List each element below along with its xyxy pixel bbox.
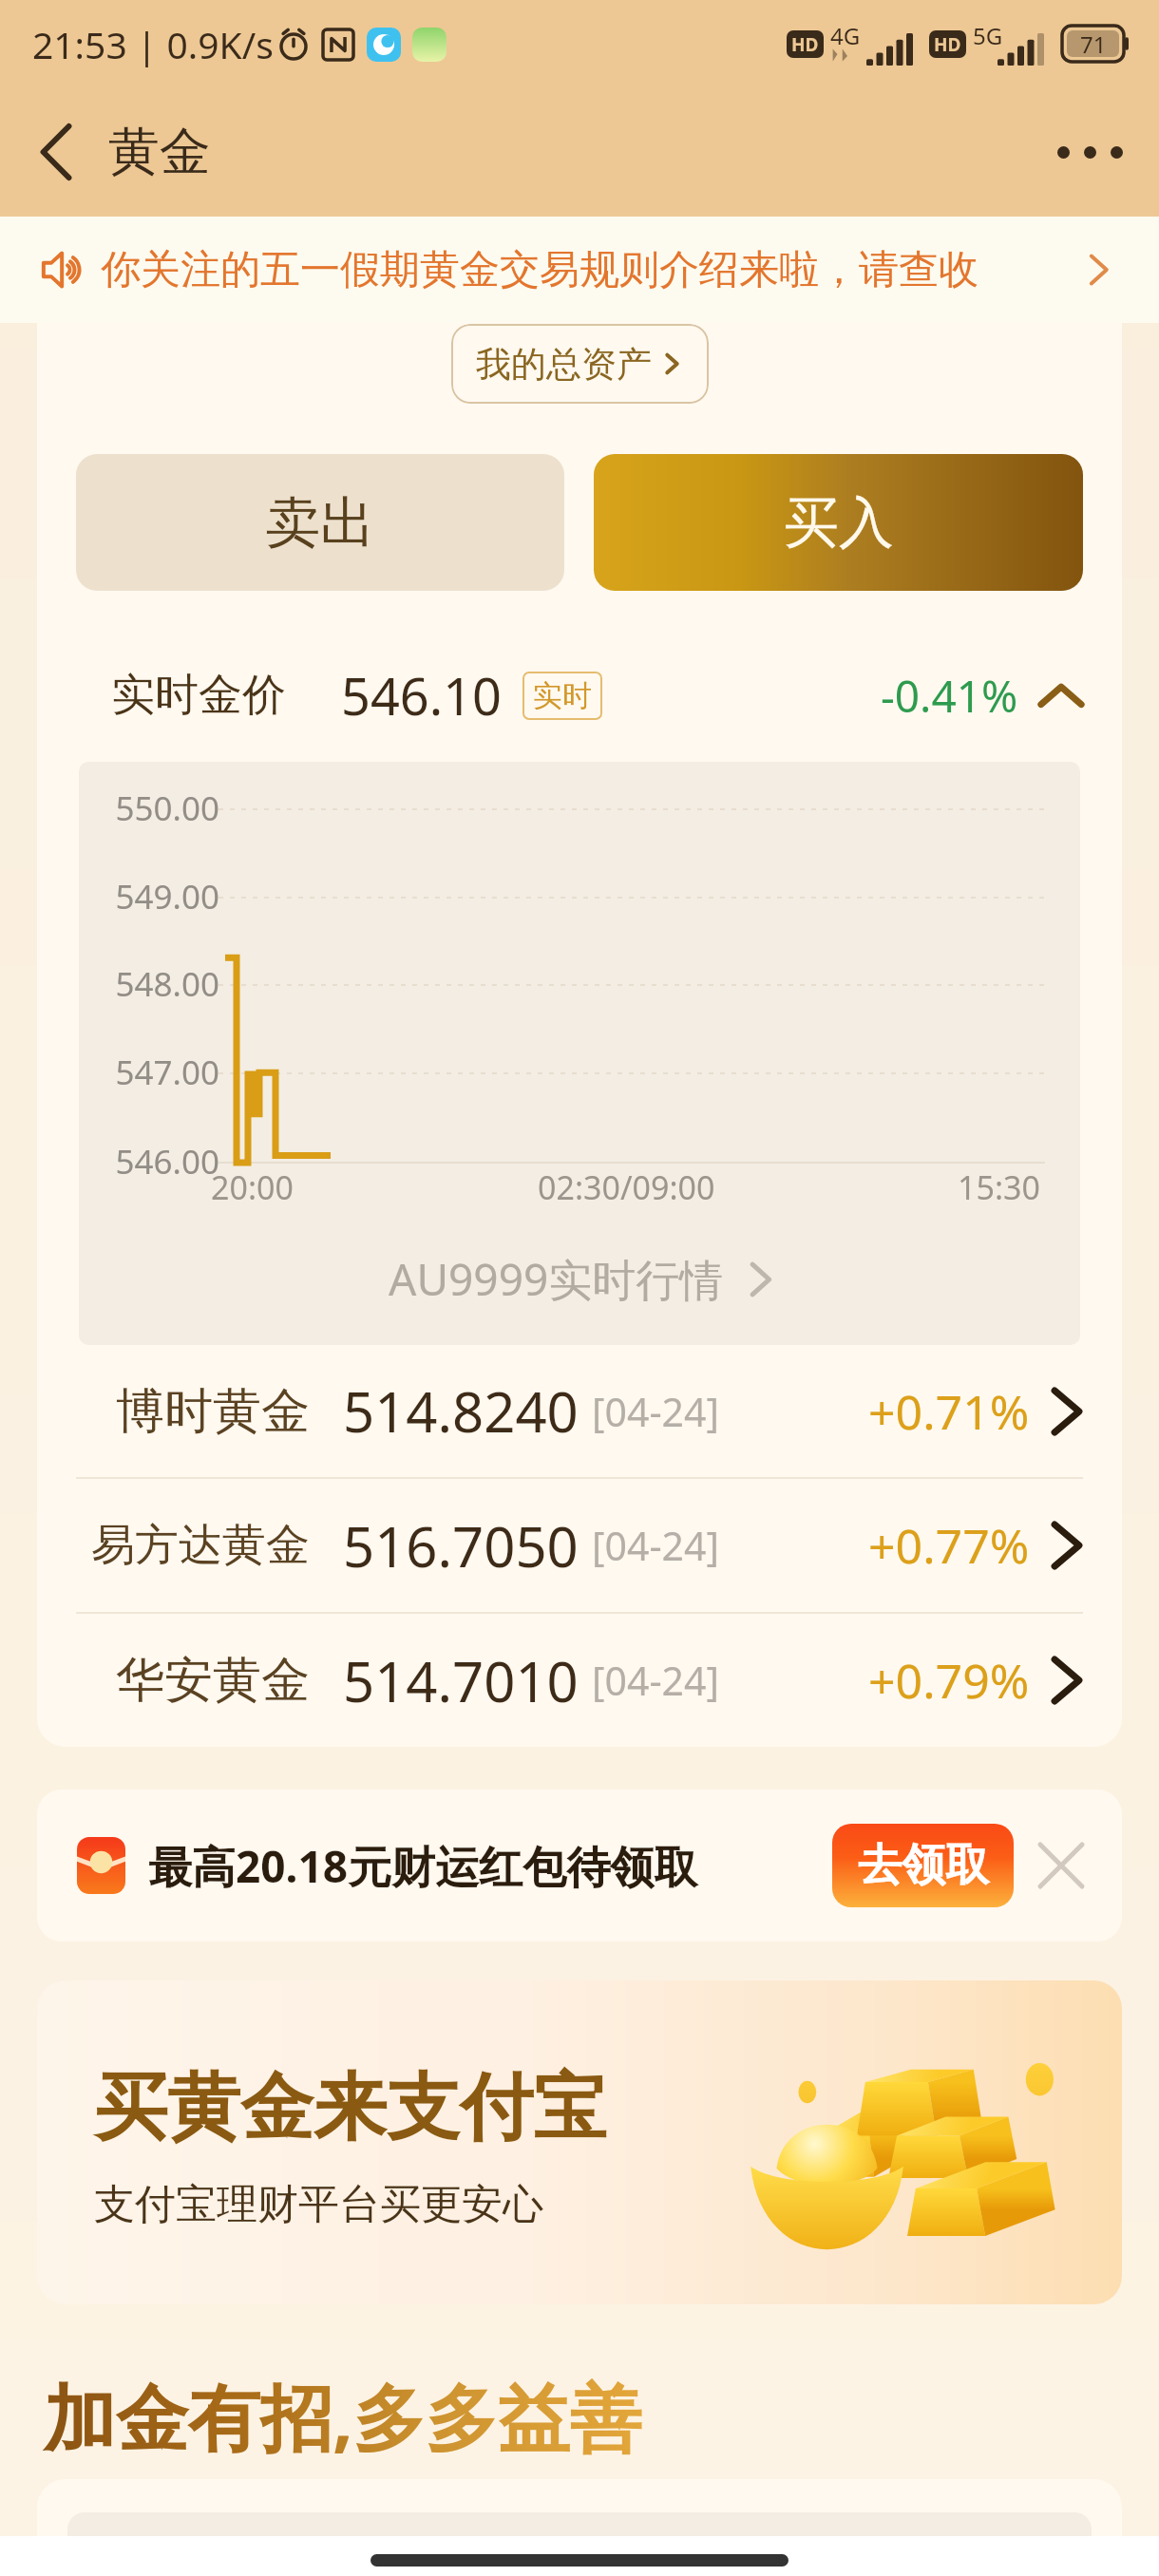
staticText: 去领取	[858, 1838, 989, 1893]
button[interactable]: 我的总资产	[451, 324, 709, 404]
button[interactable]: 博时黄金	[37, 1345, 1122, 1477]
staticText: 02:30/09:00	[538, 1165, 715, 1209]
staticText: AU9999实时行情	[389, 1249, 724, 1309]
staticText: 卖出	[265, 488, 375, 558]
staticText: 实时金价	[111, 668, 286, 723]
staticText: 21:53 | 0.9K/s	[32, 19, 274, 69]
staticText: 买入	[784, 488, 894, 558]
staticText: 4G	[830, 20, 861, 51]
staticText: 最高20.18元财运红包待领取	[148, 1836, 698, 1896]
staticText: HD	[791, 32, 819, 57]
staticText: 华安黄金	[76, 1650, 310, 1711]
staticText: -0.41%	[881, 666, 1018, 726]
staticText: +0.79%	[868, 1648, 1030, 1713]
staticText: 547.00	[79, 1050, 219, 1095]
button[interactable]: 易方达黄金	[37, 1479, 1122, 1612]
staticText: 实时	[533, 677, 592, 714]
staticText: 加金有招,多多益善	[44, 2367, 642, 2466]
staticText: +0.77%	[868, 1513, 1030, 1578]
staticText: 支付宝理财平台买更安心	[94, 2179, 543, 2230]
button[interactable]: 卖出	[76, 454, 564, 591]
staticText: [04-24]	[592, 1385, 719, 1438]
button[interactable]: 你关注的五一假期黄金交易规则介绍来啦，请查收	[0, 217, 1159, 323]
staticText: [04-24]	[592, 1654, 719, 1707]
button[interactable]: 买黄金来支付宝	[37, 1980, 1122, 2304]
staticText: [04-24]	[592, 1519, 719, 1572]
staticText: +0.71%	[868, 1379, 1030, 1444]
staticText: 548.00	[79, 961, 219, 1007]
staticText: 549.00	[79, 874, 219, 919]
staticText: 514.7010	[343, 1643, 579, 1718]
staticText: 易方达黄金	[76, 1518, 310, 1573]
button[interactable]: Close	[1035, 1839, 1088, 1892]
button[interactable]: AU9999实时行情	[389, 1249, 781, 1309]
button[interactable]: 买入	[594, 454, 1083, 591]
button[interactable]: 实时金价	[37, 591, 1122, 762]
staticText: 546.10	[341, 660, 502, 730]
staticText: 514.8240	[343, 1373, 579, 1449]
button[interactable]: 去领取	[832, 1824, 1014, 1907]
staticText: 博时黄金	[76, 1381, 310, 1442]
staticText: 买黄金来支付宝	[94, 2062, 606, 2154]
staticText: 550.00	[79, 786, 219, 831]
staticText: 你关注的五一假期黄金交易规则介绍来啦，请查收	[101, 245, 978, 295]
staticText: 516.7050	[343, 1508, 579, 1583]
staticText: HD	[934, 32, 961, 57]
staticText: 黄金	[108, 120, 211, 184]
button[interactable]: 华安黄金	[37, 1614, 1122, 1747]
staticText: 20:00	[211, 1165, 294, 1209]
staticText: 71	[1080, 28, 1107, 60]
button[interactable]: Back	[21, 117, 91, 187]
staticText: 546.00	[79, 1139, 219, 1184]
staticText: 15:30	[958, 1165, 1040, 1209]
button[interactable]: More options	[1047, 109, 1132, 195]
staticText: 5G	[973, 20, 1003, 51]
staticText: 我的总资产	[476, 342, 652, 387]
